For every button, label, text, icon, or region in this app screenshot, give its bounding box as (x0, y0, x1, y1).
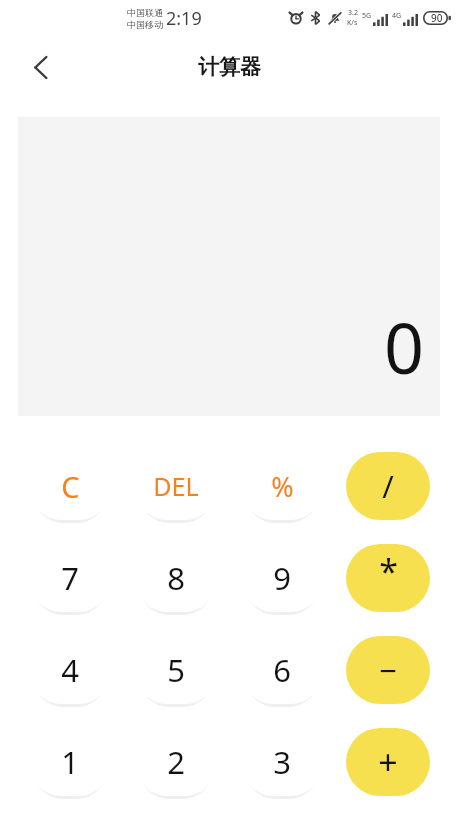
staticText: 0 (383, 299, 424, 394)
staticText: 9 (273, 557, 291, 599)
button[interactable]: − (346, 636, 430, 704)
staticText: DEL (153, 469, 199, 503)
button[interactable]: C (28, 452, 112, 520)
staticText: 8 (167, 557, 185, 599)
staticText: 4 (61, 649, 79, 691)
button[interactable]: 1 (28, 728, 112, 796)
button[interactable]: 2 (134, 728, 218, 796)
button[interactable]: 7 (28, 544, 112, 612)
staticText: 7 (61, 557, 79, 599)
staticText: 5G (362, 11, 372, 21)
staticText: 5 (167, 649, 185, 691)
staticText: 中国移动 (127, 19, 163, 30)
staticText: 4G (392, 11, 402, 21)
staticText: 1 (61, 741, 79, 783)
button[interactable]: 6 (240, 636, 324, 704)
staticText: 3.2 (348, 8, 358, 18)
button[interactable]: Back (18, 45, 62, 89)
staticText: 2:19 (166, 6, 202, 31)
button[interactable]: 8 (134, 544, 218, 612)
button[interactable]: DEL (134, 452, 218, 520)
staticText: 中国联通 (127, 7, 163, 18)
button[interactable]: + (346, 728, 430, 796)
button[interactable]: / (346, 452, 430, 520)
staticText: * (379, 548, 398, 594)
staticText: 6 (273, 649, 291, 691)
staticText: 3 (273, 741, 291, 783)
button[interactable]: 5 (134, 636, 218, 704)
button[interactable]: 3 (240, 728, 324, 796)
staticText: % (271, 468, 294, 505)
staticText: K/s (347, 18, 358, 28)
staticText: 90 (431, 11, 443, 25)
button[interactable]: % (240, 452, 324, 520)
button[interactable]: 9 (240, 544, 324, 612)
staticText: / (382, 465, 394, 507)
button[interactable]: * (346, 544, 430, 612)
staticText: + (378, 739, 398, 785)
staticText: C (61, 467, 80, 506)
staticText: − (379, 649, 397, 691)
staticText: 计算器 (198, 54, 261, 80)
button[interactable]: 4 (28, 636, 112, 704)
staticText: 2 (167, 741, 185, 783)
